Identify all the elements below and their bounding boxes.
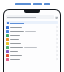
button[interactable]: Filter (55, 16, 58, 19)
button[interactable]: Open (4, 37, 60, 41)
button[interactable]: Open (4, 53, 60, 57)
button[interactable]: Open (4, 33, 60, 37)
button[interactable]: Open (4, 57, 60, 61)
button[interactable]: Open (4, 41, 60, 45)
button[interactable]: Open (4, 45, 60, 49)
button[interactable]: Open (4, 29, 60, 33)
button[interactable]: Open (4, 49, 60, 53)
button[interactable]: Open (4, 25, 60, 29)
button[interactable] (6, 21, 58, 24)
button[interactable]: Filter (6, 15, 58, 19)
